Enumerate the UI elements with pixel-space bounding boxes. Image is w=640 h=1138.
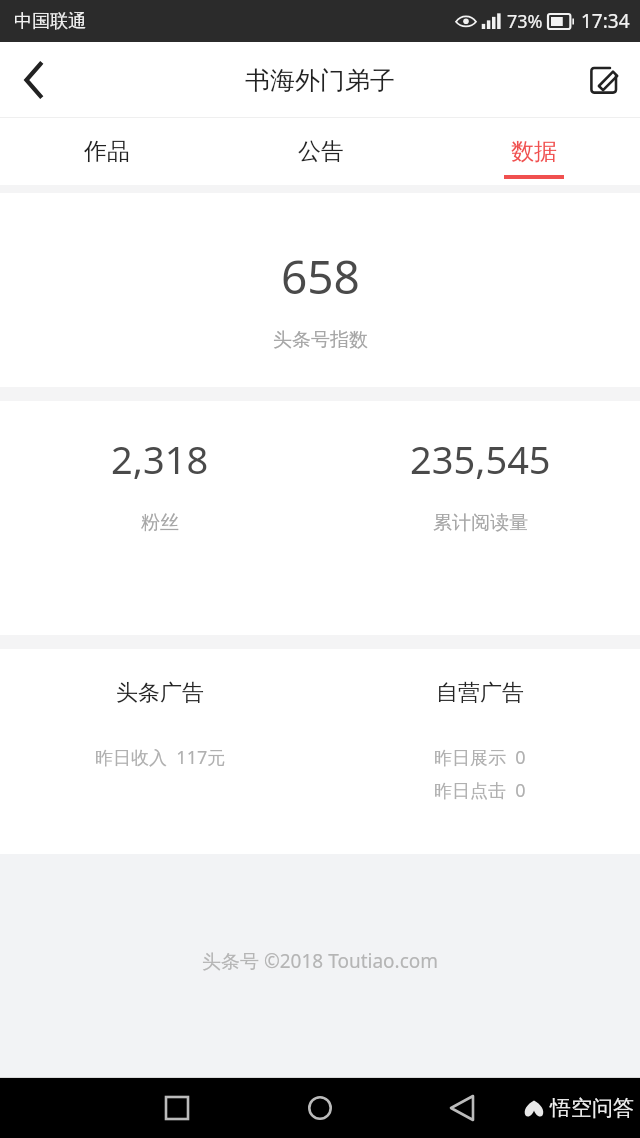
button[interactable]: Back (6, 52, 62, 108)
staticText: 数据 (511, 137, 557, 166)
button[interactable]: Home (291, 1079, 349, 1137)
staticText: 头条广告 (116, 679, 204, 707)
staticText: 头条号指数 (273, 328, 368, 352)
staticText: 昨日点击 0 (434, 778, 526, 803)
button[interactable]: 数据 (427, 118, 640, 185)
staticText: 累计阅读量 (433, 511, 528, 535)
staticText: 73% (507, 9, 543, 34)
button[interactable]: Back (433, 1079, 491, 1137)
staticText: 书海外门弟子 (245, 65, 395, 96)
button[interactable]: 头条广告 (0, 649, 320, 854)
staticText: 658 (281, 245, 360, 308)
staticText: 中国联通 (14, 10, 86, 33)
staticText: 昨日收入 117元 (95, 745, 226, 770)
staticText: 公告 (298, 137, 344, 166)
button[interactable]: 235,545 (320, 401, 640, 635)
button[interactable]: 2,318 (0, 401, 320, 635)
staticText: 昨日展示 0 (434, 745, 526, 770)
button[interactable]: Edit (576, 52, 632, 108)
staticText: 头条号 ©2018 Toutiao.com (202, 948, 439, 974)
button[interactable]: 作品 (0, 118, 214, 185)
staticText: 粉丝 (141, 511, 179, 535)
staticText: 235,545 (410, 433, 551, 485)
staticText: 2,318 (111, 433, 209, 485)
button[interactable]: 公告 (214, 118, 427, 185)
staticText: 自营广告 (436, 679, 524, 707)
button[interactable]: 自营广告 (320, 649, 640, 854)
staticText: 悟空问答 (550, 1095, 634, 1121)
staticText: 作品 (84, 137, 130, 166)
button[interactable]: Recent apps (148, 1079, 206, 1137)
staticText: 17:34 (581, 8, 630, 34)
